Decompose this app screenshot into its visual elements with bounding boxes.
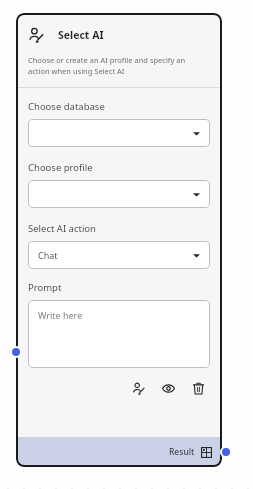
staticText: Select AI (58, 28, 104, 42)
other: Output connector (222, 448, 230, 456)
button[interactable] (28, 119, 210, 147)
button[interactable]: Preview (158, 378, 178, 398)
button[interactable]: Write here (28, 300, 210, 368)
staticText: Prompt (28, 281, 62, 294)
other: Result table (201, 447, 212, 458)
staticText: Write here (38, 309, 83, 321)
staticText: Choose or create an AI profile and speci… (28, 55, 206, 76)
button[interactable] (28, 180, 210, 208)
button[interactable]: Chat (28, 241, 210, 269)
button[interactable]: Result (16, 437, 222, 467)
other: Select AI profile (28, 27, 44, 43)
staticText: Choose profile (28, 161, 93, 174)
staticText: Chat (38, 249, 58, 261)
staticText: Result (169, 446, 195, 458)
staticText: Choose database (28, 100, 105, 113)
staticText: Select AI action (28, 222, 96, 235)
button[interactable]: Delete (188, 378, 208, 398)
other: Input connector (12, 348, 20, 356)
button[interactable]: Edit profile (128, 378, 148, 398)
